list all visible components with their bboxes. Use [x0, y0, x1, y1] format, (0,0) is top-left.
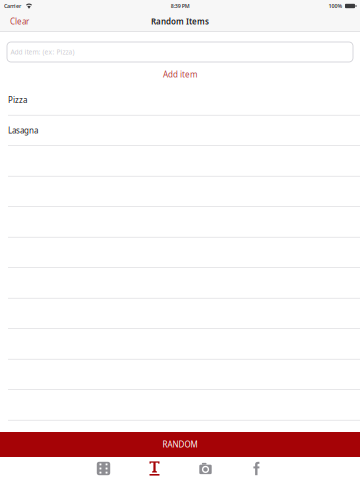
button[interactable]: Facebook [231, 457, 282, 479]
button[interactable]: RANDOM [0, 432, 360, 457]
button[interactable]: Clear [0, 12, 35, 31]
button[interactable]: Text [129, 457, 180, 479]
button[interactable]: Items [78, 457, 129, 479]
staticText: Pizza [8, 95, 27, 105]
staticText: Carrier [4, 2, 21, 10]
button[interactable]: Lasagna [0, 115, 360, 146]
staticText: Clear [10, 16, 29, 27]
button[interactable]: Camera [180, 457, 231, 479]
staticText: Add item [163, 69, 197, 80]
staticText: 100% [328, 2, 342, 10]
staticText: RANDOM [162, 439, 197, 450]
staticText: 8:39 PM [171, 2, 190, 10]
button[interactable]: Add item [0, 62, 360, 85]
staticText: Random Items [151, 16, 209, 27]
staticText: Add item: (ex: Pizza) [10, 48, 74, 56]
button[interactable]: Pizza [0, 85, 360, 115]
staticText: Lasagna [8, 125, 38, 136]
